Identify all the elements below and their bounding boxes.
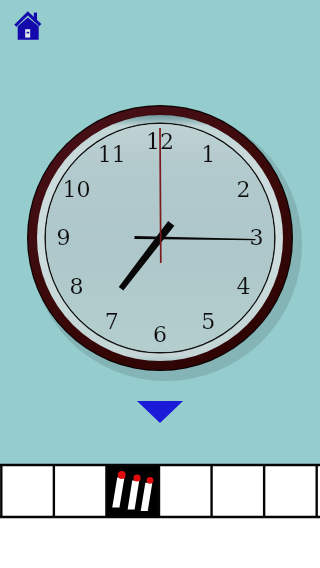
- button[interactable]: Expand: [137, 401, 183, 423]
- button[interactable]: Tab 1: [0, 464, 54, 518]
- button[interactable]: Tab 6: [267, 464, 320, 518]
- button[interactable]: Tab 4: [161, 464, 214, 518]
- button[interactable]: Tab 3: [108, 464, 161, 518]
- button[interactable]: Home: [13, 10, 41, 41]
- button[interactable]: Tab 5: [214, 464, 267, 518]
- button[interactable]: Tab 2: [54, 464, 108, 518]
